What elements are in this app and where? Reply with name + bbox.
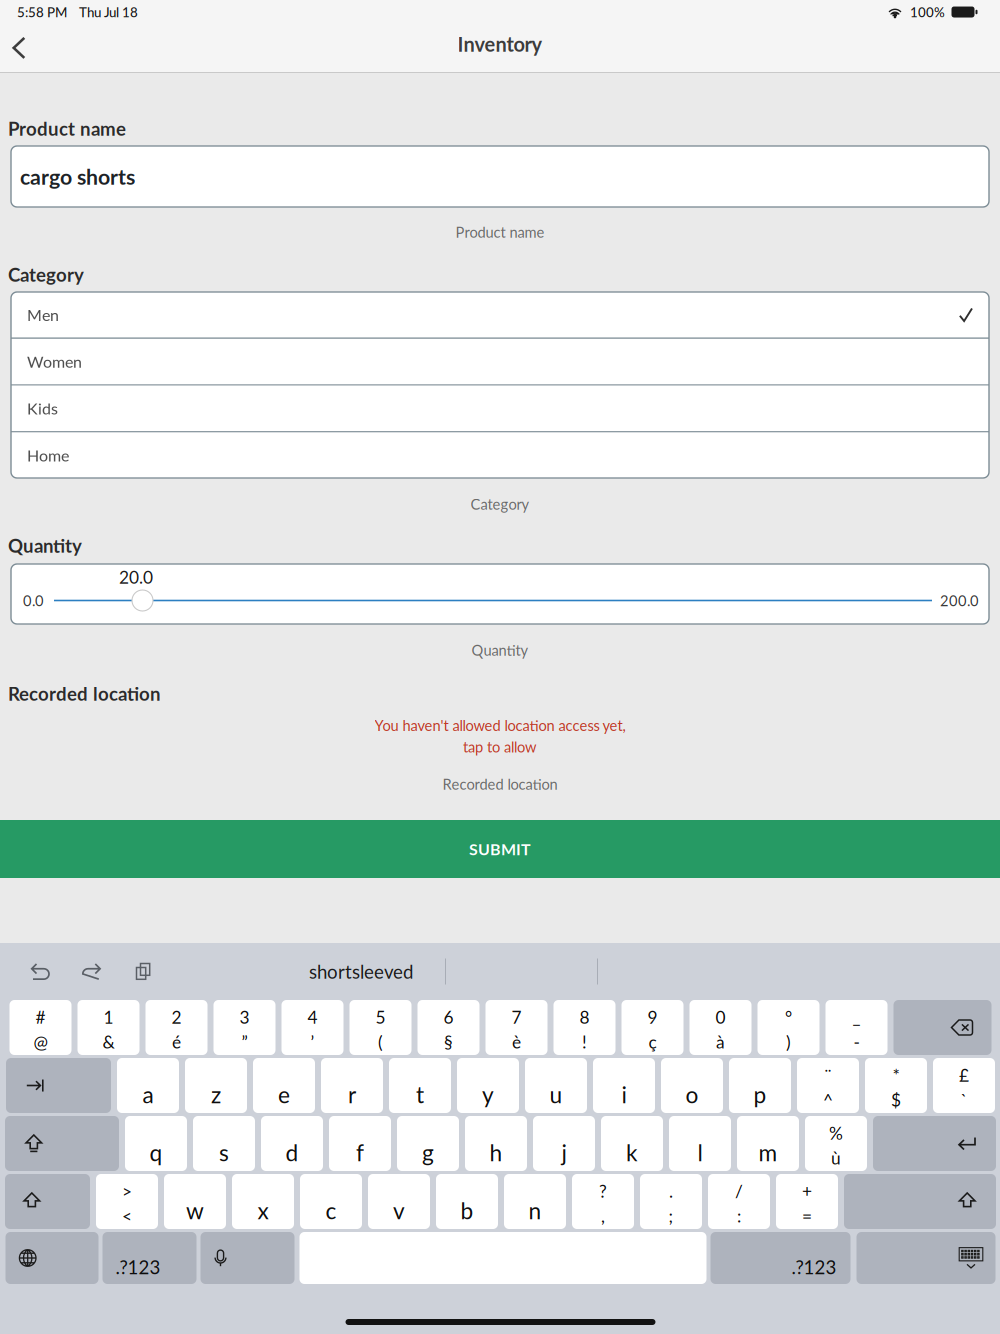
button[interactable]: Paste [135,962,151,980]
staticText: o [685,1081,698,1108]
button[interactable]: You haven't allowed location access yet, [0,719,1000,753]
staticText: b [460,1197,473,1224]
button[interactable]: q [125,1116,187,1171]
staticText: 8 [579,1007,589,1027]
button[interactable]: p [729,1058,791,1113]
button[interactable]: Shift [844,1174,996,1229]
staticText: i [621,1081,626,1108]
button[interactable]: s [193,1116,255,1171]
button[interactable]: Dictate [200,1232,294,1284]
staticText: SUBMIT [469,839,531,859]
button[interactable]: u [525,1058,587,1113]
button[interactable]: t [389,1058,451,1113]
button[interactable]: _ [825,1000,887,1055]
button[interactable]: % [805,1116,867,1171]
button[interactable]: Next keyboard [5,1232,98,1284]
button[interactable]: Back [0,25,38,71]
button[interactable]: 1 [77,1000,139,1055]
button[interactable]: # [9,1000,71,1055]
staticText: w [186,1197,204,1224]
button[interactable]: v [368,1174,430,1229]
button[interactable]: Tab [6,1058,111,1113]
button[interactable]: 0 [689,1000,751,1055]
button[interactable]: h [465,1116,527,1171]
button[interactable]: Hide keyboard [856,1232,995,1284]
staticText: - [853,1031,859,1052]
button[interactable]: k [601,1116,663,1171]
staticText: e [278,1081,290,1108]
button[interactable]: shortsleeved [299,956,423,986]
button[interactable]: / [708,1174,770,1229]
button[interactable]: Redo [81,963,101,980]
staticText: u [549,1081,562,1108]
button[interactable]: z [185,1058,247,1113]
staticText: Inventory [457,32,542,56]
button[interactable]: y [457,1058,519,1113]
button[interactable]: .?123 [710,1232,850,1284]
button[interactable]: Shift [5,1174,90,1229]
button[interactable]: 5 [349,1000,411,1055]
staticText: § [444,1031,453,1052]
button[interactable]: £ [933,1058,995,1113]
button[interactable]: 9 [621,1000,683,1055]
staticText: .?123 [791,1256,836,1278]
button[interactable]: i [593,1058,655,1113]
button[interactable]: 4 [281,1000,343,1055]
staticText: m [758,1139,777,1166]
button[interactable]: > [96,1174,158,1229]
button[interactable]: j [533,1116,595,1171]
button[interactable]: a [117,1058,179,1113]
button[interactable]: Undo [30,963,50,980]
button[interactable]: 6 [417,1000,479,1055]
button[interactable]: Return [873,1116,996,1171]
staticText: 7 [511,1007,521,1027]
button[interactable]: Kids [11,386,989,431]
button[interactable]: l [669,1116,731,1171]
button[interactable]: . [640,1174,702,1229]
staticText: v [393,1197,405,1224]
button[interactable]: Caps lock [5,1116,119,1171]
button[interactable]: SUBMIT [0,820,1000,878]
button[interactable]: Backspace [893,1000,991,1055]
button[interactable]: d [261,1116,323,1171]
staticText: Home [27,446,69,465]
staticText: k [626,1139,638,1166]
button[interactable]: w [164,1174,226,1229]
button[interactable]: c [300,1174,362,1229]
button[interactable]: * [865,1058,927,1113]
button[interactable]: ¨ [797,1058,859,1113]
button[interactable]: 7 [485,1000,547,1055]
staticText: ¨ [824,1065,831,1085]
staticText: Women [27,352,82,371]
button[interactable]: Women [11,339,989,384]
staticText: f [356,1139,364,1166]
staticText: < [122,1205,132,1226]
staticText: è [512,1031,521,1052]
staticText: ( [378,1031,383,1052]
button[interactable]: e [253,1058,315,1113]
button[interactable]: x [232,1174,294,1229]
button[interactable]: Home [11,432,989,478]
button[interactable]: g [397,1116,459,1171]
staticText: You haven't allowed location access yet, [374,716,625,734]
staticText: % [829,1123,843,1143]
button[interactable]: ? [572,1174,634,1229]
button[interactable]: 3 [213,1000,275,1055]
button[interactable]: 8 [553,1000,615,1055]
button[interactable]: + [776,1174,838,1229]
staticText: j [561,1139,566,1166]
staticText: s [219,1139,229,1166]
button[interactable]: 2 [145,1000,207,1055]
staticText: @ [33,1031,47,1052]
button[interactable]: o [661,1058,723,1113]
button[interactable]: .?123 [102,1232,196,1284]
button[interactable]: n [504,1174,566,1229]
button[interactable]: Men [11,292,989,337]
button[interactable]: r [321,1058,383,1113]
staticText: 9 [647,1007,657,1027]
button[interactable]: f [329,1116,391,1171]
button[interactable]: ° [757,1000,819,1055]
button[interactable]: m [737,1116,799,1171]
button[interactable]: b [436,1174,498,1229]
